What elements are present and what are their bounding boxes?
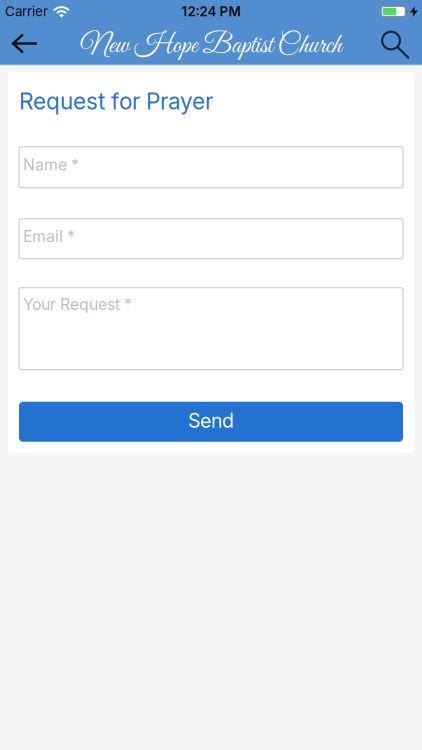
staticText: Your Request * [23,295,132,314]
button[interactable]: Email * [19,219,403,259]
staticText: New Hope Baptist Church [80,29,341,63]
staticText: 12:24 PM [181,4,240,19]
button[interactable]: Send [19,402,403,442]
button[interactable]: Back [0,22,38,64]
staticText: Email * [23,227,75,246]
button[interactable]: Your Request * [19,288,403,370]
button[interactable]: Search [381,22,422,64]
staticText: Carrier [5,4,48,19]
button[interactable]: Name * [19,147,403,188]
staticText: Send [188,409,234,432]
staticText: Name * [23,155,79,174]
staticText: Request for Prayer [19,88,213,115]
